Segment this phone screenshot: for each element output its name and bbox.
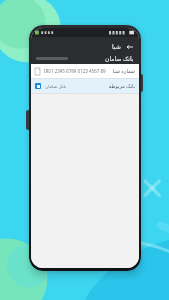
button[interactable]: Back [125,42,134,51]
staticText: بانک مربوطه [108,83,135,90]
button[interactable]: بانک سامان [31,79,139,93]
button[interactable]: IR01 2345 6789 0123 4567 89 [31,64,139,78]
staticText: شبا [112,43,121,50]
staticText: IR01 2345 6789 0123 4567 89 [44,68,106,74]
staticText: بانک سامان [45,83,67,89]
staticText: شماره شبا [112,68,135,75]
staticText: بانک سامان [105,55,134,63]
